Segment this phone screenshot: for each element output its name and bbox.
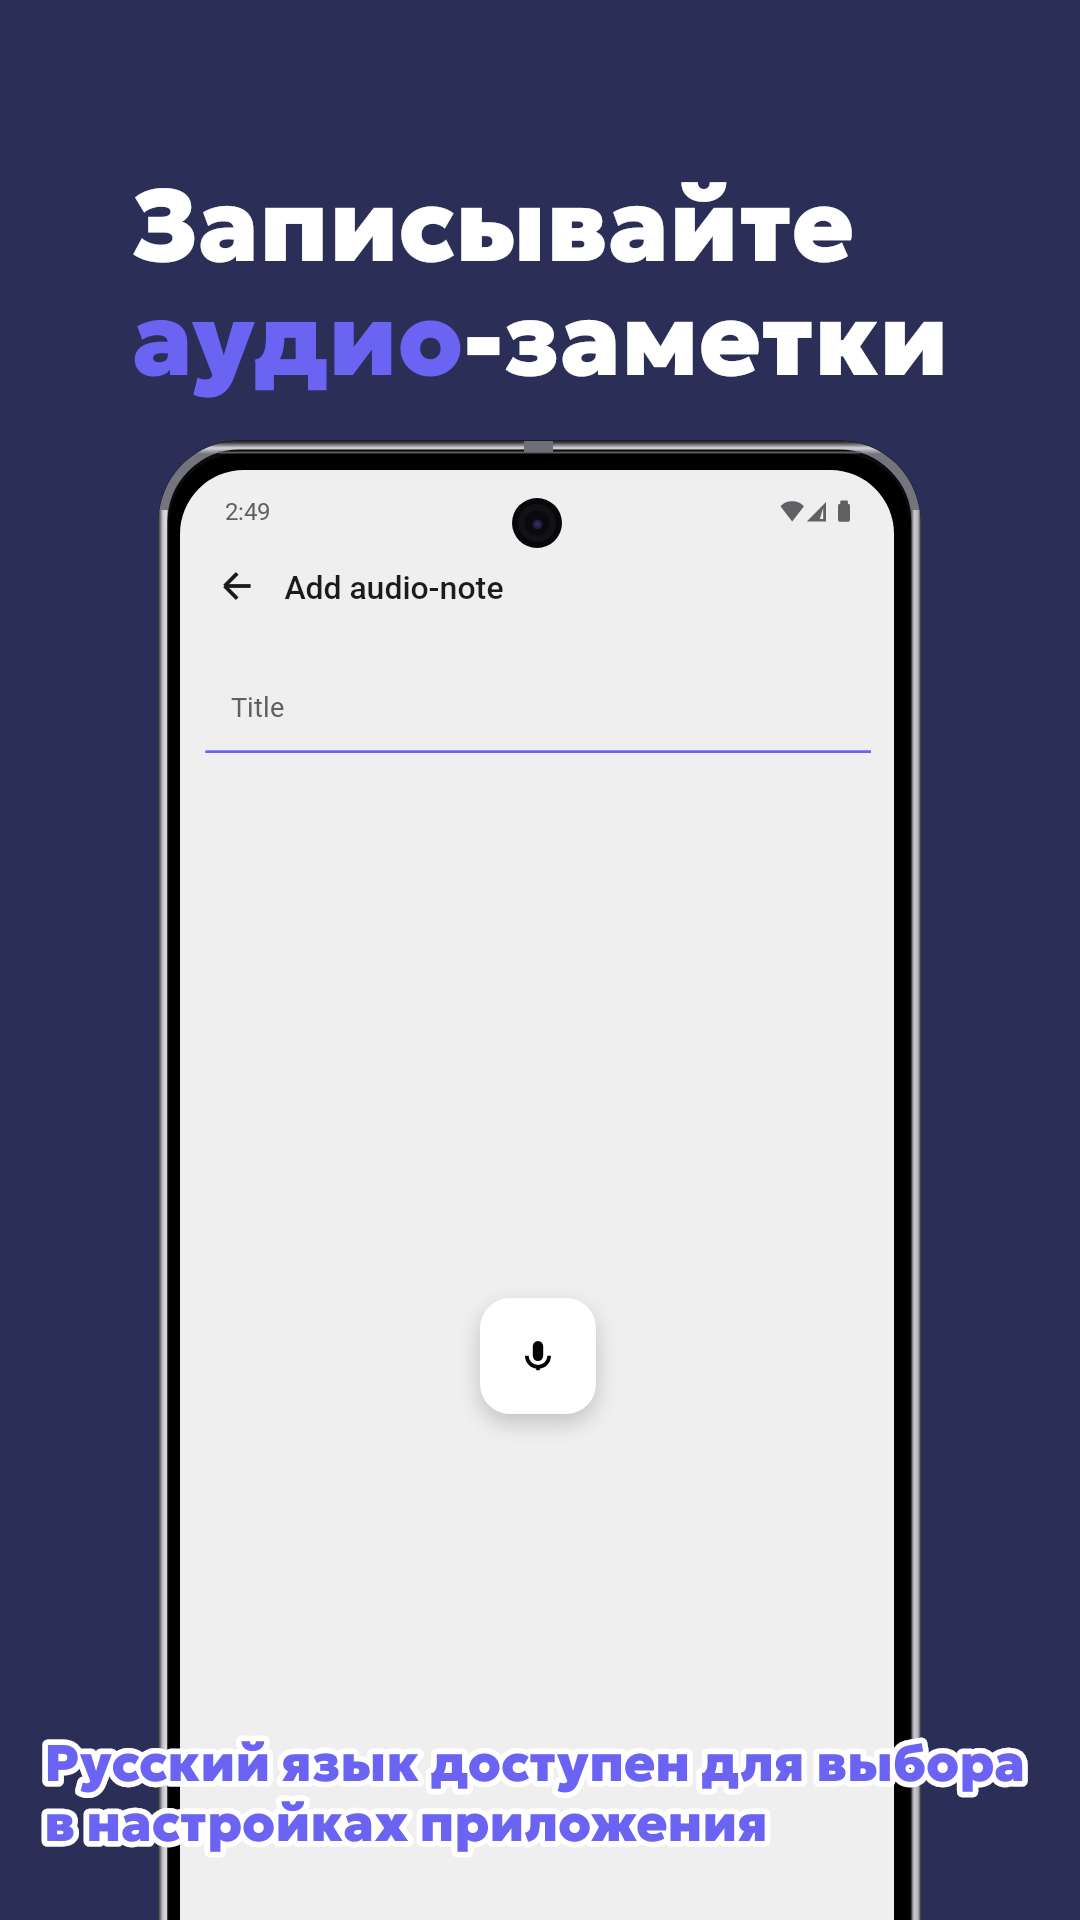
- button[interactable]: Title text field: [204, 680, 872, 754]
- button[interactable]: Record audio note: [480, 1298, 596, 1414]
- button[interactable]: Back: [208, 556, 268, 616]
